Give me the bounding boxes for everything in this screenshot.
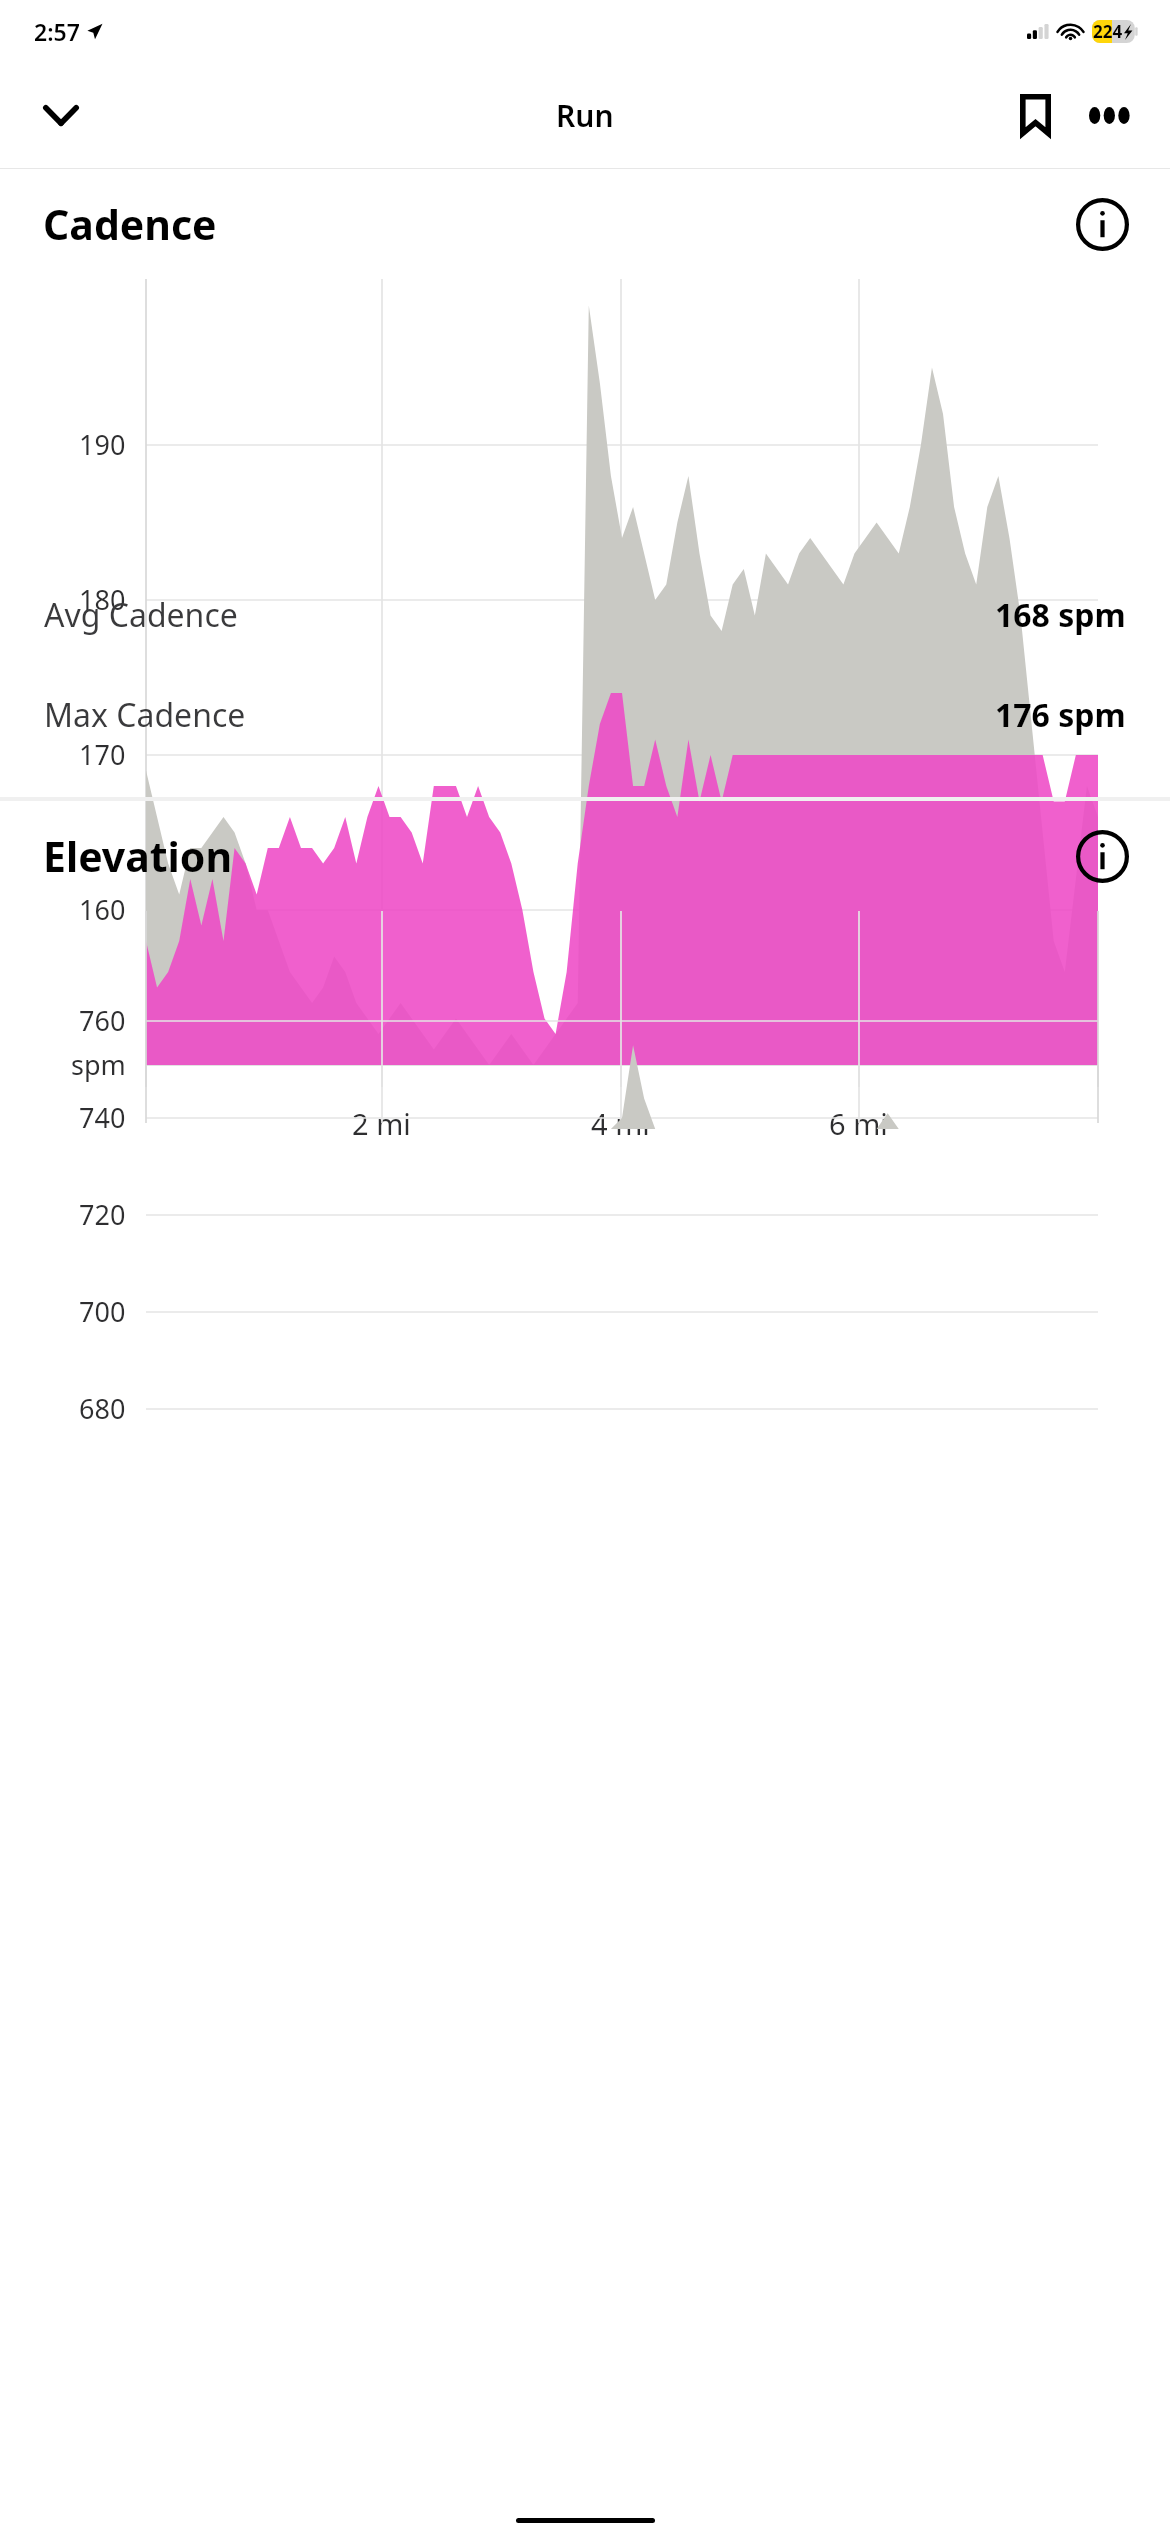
staticText: 160 [79,891,126,928]
staticText: Avg Cadence [44,593,238,637]
staticText: 170 [79,736,126,773]
staticText: 6 mi [829,1104,888,1143]
staticText: Max Cadence [44,693,246,737]
staticText: 190 [79,426,126,463]
staticText: 760 [79,1002,126,1039]
staticText: 224 [1093,20,1123,43]
button[interactable]: Info about Elevation [1072,826,1132,886]
staticText: spm [71,1046,126,1083]
staticText: Elevation [43,828,233,884]
button[interactable]: Info about Cadence [1072,194,1132,254]
staticText: 2:57 [34,16,80,47]
staticText: 700 [79,1293,126,1330]
staticText: Cadence [43,196,217,252]
staticText: 720 [79,1196,126,1233]
button[interactable]: Bookmark [998,78,1072,152]
staticText: 176 spm [995,693,1126,737]
staticText: 168 spm [995,593,1126,637]
staticText: 4 mi [591,1104,650,1143]
staticText: Run [556,95,614,136]
button[interactable]: Avg Cadence [0,565,1170,665]
button[interactable]: More options [1074,78,1148,152]
button[interactable]: Collapse [20,74,102,156]
button[interactable]: Max Cadence [0,665,1170,765]
staticText: 2 mi [352,1104,411,1143]
staticText: 180 [79,581,126,618]
staticText: 740 [79,1099,126,1136]
staticText: 680 [79,1390,126,1427]
